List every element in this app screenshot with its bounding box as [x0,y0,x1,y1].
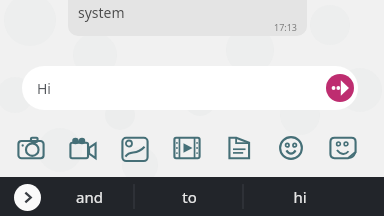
button[interactable]: hi [250,177,350,216]
button[interactable]: Video [66,131,100,165]
button[interactable]: Emoji [274,131,308,165]
button[interactable]: Hi [22,66,358,110]
staticText: 17:13 [274,21,298,33]
button[interactable]: Document [222,131,256,165]
button[interactable]: Movie [170,131,204,165]
button[interactable]: and [44,177,134,216]
staticText: Hi [37,79,51,98]
staticText: system [78,3,125,22]
staticText: and [76,187,103,207]
button[interactable]: Expand suggestions [14,184,41,211]
staticText: hi [293,187,307,207]
button[interactable]: system [68,0,307,36]
button[interactable]: Sticker [326,131,360,165]
button[interactable]: Camera [14,131,48,165]
button[interactable]: Gallery [118,131,152,165]
button[interactable]: to [140,177,238,216]
staticText: to [182,187,197,207]
button[interactable]: Send [326,74,354,102]
